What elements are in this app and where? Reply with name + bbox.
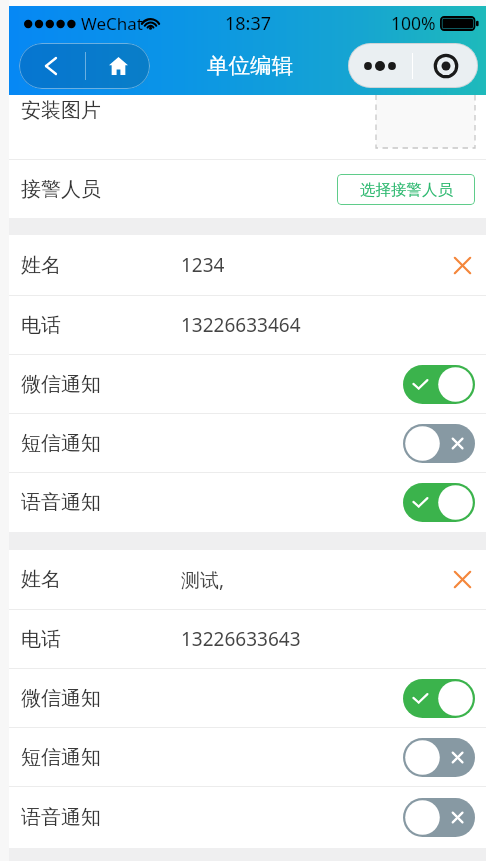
staticText: 语音通知 (21, 490, 101, 515)
button[interactable]: 微信通知 (0, 355, 486, 413)
button[interactable]: 语音通知 (0, 787, 486, 848)
staticText: 短信通知 (21, 431, 101, 456)
staticText: 微信通知 (21, 372, 101, 397)
button[interactable]: Remove (446, 249, 479, 282)
button[interactable]: 姓名 (0, 235, 486, 295)
button[interactable]: 电话 (0, 610, 486, 668)
button[interactable]: 语音通知 (0, 473, 486, 532)
staticText: 单位编辑 (207, 52, 293, 79)
staticText: 18:37 (225, 11, 272, 36)
staticText: 测试, (181, 567, 225, 593)
button[interactable]: Disabled toggle (403, 798, 475, 837)
staticText: 电话 (21, 313, 61, 338)
staticText: 选择接警人员 (360, 180, 453, 200)
staticText: 姓名 (21, 253, 61, 278)
button[interactable]: 姓名 (0, 550, 486, 609)
button[interactable]: 安装图片 (0, 95, 486, 159)
button[interactable]: Close mini program (413, 43, 478, 88)
button[interactable]: Back (19, 43, 85, 89)
staticText: 13226633643 (181, 626, 301, 652)
staticText: 电话 (21, 627, 61, 652)
button[interactable]: Home (86, 43, 150, 89)
button[interactable]: 电话 (0, 296, 486, 354)
button[interactable]: 短信通知 (0, 414, 486, 472)
staticText: 微信通知 (21, 686, 101, 711)
staticText: 姓名 (21, 567, 61, 592)
staticText: 语音通知 (21, 805, 101, 830)
button[interactable]: 短信通知 (0, 728, 486, 786)
button[interactable]: Disabled toggle (403, 738, 475, 777)
button[interactable]: More options (348, 43, 412, 88)
staticText: 1234 (181, 252, 225, 278)
staticText: 安装图片 (21, 98, 101, 123)
button[interactable]: Disabled toggle (403, 424, 475, 463)
button[interactable]: 微信通知 (0, 669, 486, 727)
staticText: 接警人员 (21, 177, 101, 202)
button[interactable]: 选择接警人员 (337, 174, 475, 205)
button[interactable]: Enabled toggle (403, 365, 475, 404)
staticText: 13226633464 (181, 312, 301, 338)
staticText: 100% (391, 11, 436, 35)
button[interactable]: Enabled toggle (403, 483, 475, 522)
staticText: 短信通知 (21, 745, 101, 770)
button[interactable]: Remove (446, 563, 479, 596)
button[interactable]: Enabled toggle (403, 679, 475, 718)
staticText: WeChat (81, 12, 143, 35)
button[interactable]: 接警人员 (0, 160, 486, 218)
